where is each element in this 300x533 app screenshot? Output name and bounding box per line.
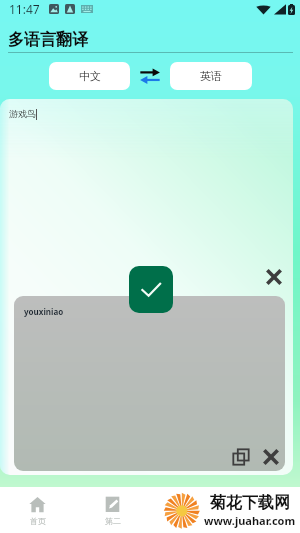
staticText: youxiniao [24, 306, 64, 317]
staticText: 首页 [30, 516, 46, 526]
staticText: 菊花下载网 [210, 493, 290, 513]
staticText: 多语言翻译 [8, 30, 88, 50]
button[interactable]: youxiniao [14, 296, 285, 471]
staticText: 游戏鸟 [9, 108, 36, 119]
button[interactable]: 第二 [75, 487, 150, 526]
staticText: 英语 [200, 69, 222, 83]
staticText: www.juahar.com [204, 513, 296, 528]
staticText: 中文 [79, 69, 101, 83]
button[interactable]: 中文 [49, 62, 130, 90]
button[interactable]: Copy [230, 446, 252, 468]
button[interactable] [0, 99, 293, 475]
button[interactable]: Translate [129, 266, 173, 313]
button[interactable]: Close [260, 446, 282, 468]
button[interactable]: Swap languages [138, 66, 162, 86]
staticText: 11:47 [9, 1, 40, 17]
button[interactable]: 英语 [170, 62, 252, 90]
button[interactable]: Clear text [263, 266, 285, 288]
button[interactable]: 首页 [0, 487, 75, 526]
staticText: 第二 [105, 516, 121, 526]
